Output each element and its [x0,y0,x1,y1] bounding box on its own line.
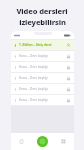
staticText: Konu – Ders başlığı [19,76,48,80]
button[interactable]: 1. Bölüm – Giriş dersi [11,40,74,50]
staticText: Video dersleri [16,6,68,16]
staticText: Konu – Ders başlığı [19,87,48,91]
staticText: 1. Bölüm – Giriş dersi [19,43,52,47]
button[interactable]: Konu – Ders başlığı [11,73,74,83]
button[interactable]: Profile [59,137,68,146]
other: Locked lesson [66,87,71,92]
staticText: Konu – Ders başlığı [19,65,48,69]
button[interactable]: Start lesson [37,136,48,147]
button[interactable]: Konu – Ders başlığı [11,62,74,72]
other: Locked lesson [66,65,71,70]
button[interactable]: Konu – Ders başlığı [11,51,74,61]
other: Locked lesson [66,76,71,81]
other: Current lesson [66,43,71,48]
other: Locked lesson [66,98,71,103]
button[interactable]: Lessons [17,137,26,146]
button[interactable]: Konu – Ders başlığı [11,95,74,105]
staticText: Konu – Ders başlığı [19,98,48,102]
other: Locked lesson [66,54,71,59]
staticText: Konu – Ders başlığı [19,54,48,58]
staticText: izleyebilirsin [19,17,66,27]
button[interactable]: Konu – Ders başlığı [11,84,74,94]
